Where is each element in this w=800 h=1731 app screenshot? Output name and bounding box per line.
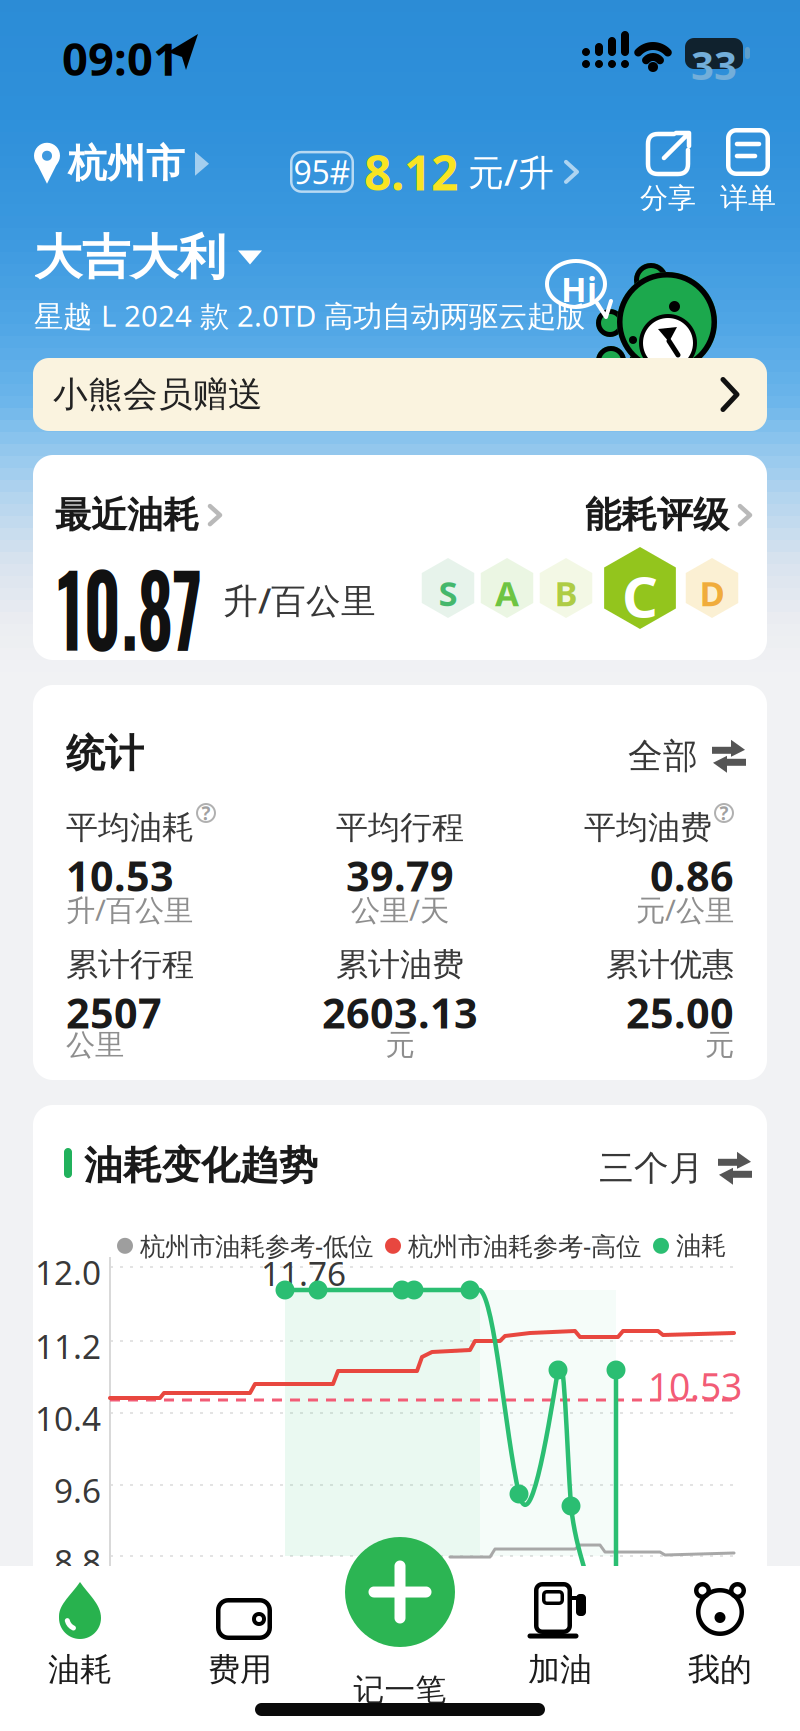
button[interactable]: 三个月 [599, 1147, 752, 1190]
staticText: 油耗 [48, 1650, 112, 1689]
staticText: 大吉大利 [34, 228, 226, 287]
button[interactable]: 记一笔 [345, 1537, 455, 1647]
staticText: 9.6 [54, 1468, 101, 1512]
button[interactable]: 全部 [628, 735, 746, 778]
staticText: 升/百公里 [223, 577, 376, 623]
staticText: 0.86 [650, 848, 734, 903]
staticText: 平均油费 [584, 808, 712, 847]
staticText: 统计 [66, 730, 144, 777]
staticText: 2603.13 [322, 985, 478, 1040]
button[interactable]: 最近油耗 [55, 493, 222, 537]
staticText: 8.12 [364, 140, 458, 204]
staticText: Hi [561, 267, 597, 311]
staticText: 费用 [208, 1650, 272, 1689]
staticText: 10.53 [66, 848, 174, 903]
staticText: C [622, 559, 658, 633]
staticText: B [554, 570, 577, 616]
staticText: 公里/天 [351, 890, 449, 929]
staticText: 09:01 [62, 28, 179, 88]
staticText: 最近油耗 [55, 493, 199, 537]
button[interactable]: 小熊会员赠送 [33, 358, 767, 431]
staticText: 油耗 [676, 1230, 726, 1261]
staticText: 三个月 [599, 1147, 704, 1190]
staticText: 累计优惠 [606, 945, 734, 984]
button[interactable]: 95# [290, 140, 579, 204]
staticText: 全部 [628, 735, 698, 778]
staticText: 累计油费 [336, 945, 464, 984]
staticText: 10.53 [648, 1361, 742, 1411]
staticText: 杭州市油耗参考-低位 [140, 1229, 373, 1263]
button[interactable]: 分享 [640, 128, 696, 215]
button[interactable]: 能耗评级 [585, 493, 752, 537]
button[interactable]: 详单 [720, 128, 776, 215]
staticText: 25.00 [626, 985, 734, 1040]
staticText: 39.79 [346, 848, 454, 903]
staticText: 95# [293, 151, 350, 193]
button[interactable]: 费用 [175, 1580, 305, 1689]
staticText: A [495, 570, 519, 616]
button[interactable]: 油耗 [15, 1580, 145, 1689]
staticText: 10.4 [35, 1396, 101, 1440]
button[interactable]: 加油 [495, 1580, 625, 1689]
button[interactable]: 杭州市 [34, 140, 211, 187]
staticText: 2507 [66, 985, 162, 1040]
staticText: 我的 [688, 1650, 752, 1689]
staticText: 8.8 [54, 1539, 101, 1583]
staticText: ? [201, 801, 210, 825]
staticText: 小熊会员赠送 [53, 373, 263, 416]
staticText: 分享 [640, 181, 696, 215]
staticText: 33 [691, 38, 737, 91]
staticText: 11.2 [35, 1324, 101, 1368]
staticText: S [438, 570, 457, 616]
button[interactable]: 大吉大利 [34, 228, 262, 287]
staticText: 杭州市油耗参考-高位 [408, 1229, 641, 1263]
staticText: 10.87 [57, 533, 264, 679]
staticText: 累计行程 [66, 945, 194, 984]
staticText: 12.0 [35, 1250, 101, 1294]
staticText: 公里 [66, 1027, 124, 1063]
staticText: ? [719, 801, 728, 825]
staticText: 元/公里 [636, 890, 734, 929]
staticText: 加油 [528, 1650, 592, 1689]
staticText: 平均行程 [336, 808, 464, 847]
staticText: 能耗评级 [585, 493, 729, 537]
staticText: 油耗变化趋势 [84, 1142, 318, 1189]
staticText: 升/百公里 [66, 890, 193, 929]
staticText: 详单 [720, 181, 776, 215]
staticText: 平均油耗 [66, 808, 194, 847]
staticText: 元 [705, 1027, 734, 1063]
staticText: 杭州市 [68, 140, 185, 187]
staticText: 记一笔 [353, 1671, 446, 1709]
staticText: D [699, 570, 724, 616]
button[interactable]: 我的 [655, 1580, 785, 1689]
staticText: 元/升 [468, 148, 554, 196]
staticText: 星越 L 2024 款 2.0TD 高功自动两驱云起版 [34, 296, 585, 335]
staticText: 11.76 [261, 1251, 346, 1295]
staticText: 元 [385, 1027, 414, 1063]
